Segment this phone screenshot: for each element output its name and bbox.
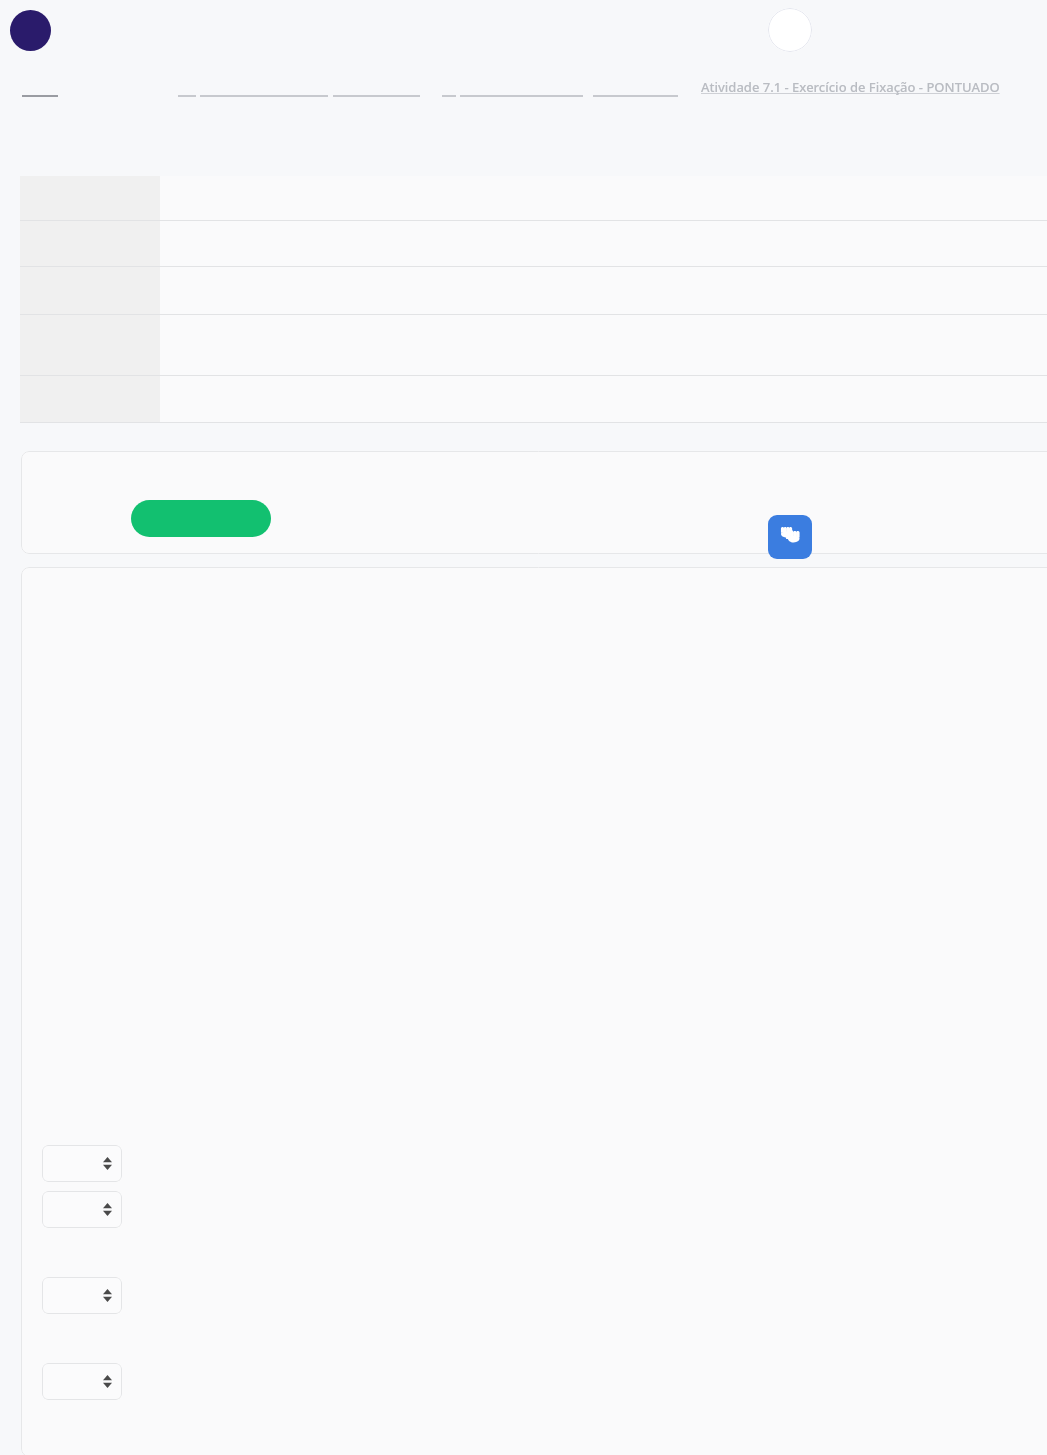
button[interactable]: Selecionar opção xyxy=(42,1277,122,1314)
button[interactable]: Enviar xyxy=(131,500,271,537)
staticText: Atividade 7.1 - Exercício de Fixação - P… xyxy=(701,78,1000,96)
button[interactable]: Selecionar opção xyxy=(42,1145,122,1182)
button[interactable]: VLibras - Acessibilidade em Libras xyxy=(768,515,812,559)
button[interactable]: Selecionar opção xyxy=(42,1363,122,1400)
button[interactable]: Ação xyxy=(768,8,812,52)
button[interactable]: Selecionar opção xyxy=(42,1191,122,1228)
button[interactable]: Atividade 7.1 - Exercício de Fixação - P… xyxy=(701,78,1000,96)
button[interactable]: Perfil xyxy=(10,10,51,51)
